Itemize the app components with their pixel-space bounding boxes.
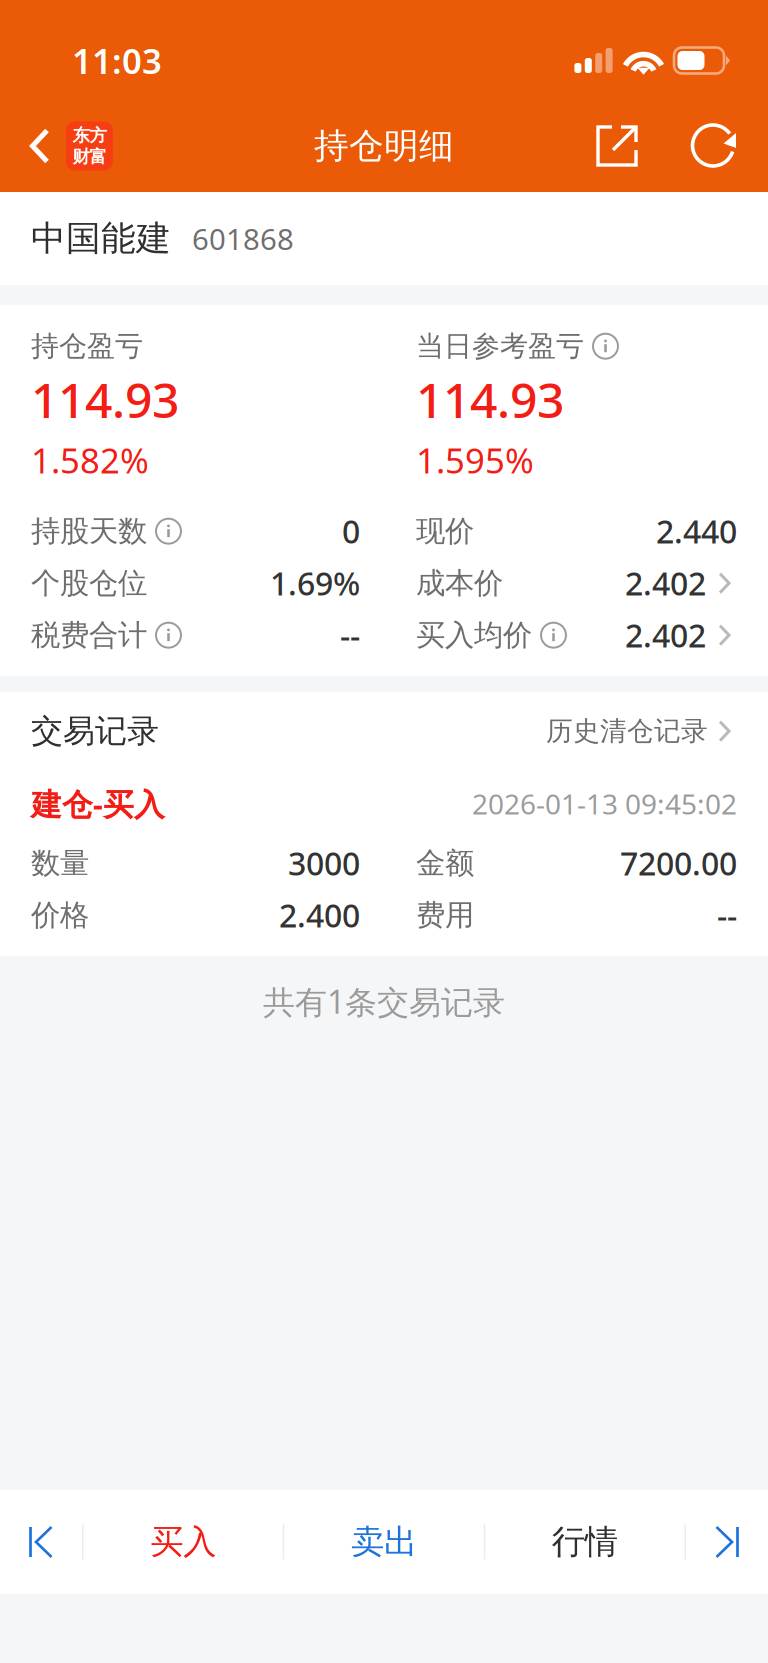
staticText: 价格 [31, 897, 89, 933]
staticText: 东方 [72, 125, 106, 146]
staticText: 税费合计 [31, 617, 147, 653]
button[interactable]: 买入 [83, 1490, 283, 1594]
staticText: -- [717, 894, 737, 936]
staticText: 历史清仓记录 [546, 715, 708, 748]
staticText: -- [340, 614, 360, 656]
staticText: 费用 [416, 897, 474, 933]
staticText: 当日参考盈亏 [416, 329, 584, 363]
staticText: 114.93 [416, 367, 564, 431]
staticText: 2.400 [279, 894, 360, 936]
staticText: 1.69% [270, 562, 360, 604]
staticText: 行情 [552, 1521, 618, 1562]
button[interactable]: 行情 [485, 1490, 685, 1594]
staticText: 1.595% [416, 437, 534, 483]
staticText: 7200.00 [620, 842, 737, 884]
staticText: 1.582% [31, 437, 149, 483]
staticText: 601868 [192, 219, 294, 258]
staticText: 2.402 [625, 562, 706, 604]
staticText: 0 [342, 510, 360, 552]
staticText: 现价 [416, 513, 474, 549]
staticText: 个股仓位 [31, 565, 147, 601]
button[interactable]: Refresh [676, 100, 753, 192]
button[interactable]: Back [0, 100, 125, 192]
staticText: 11:03 [72, 37, 162, 83]
button[interactable]: Previous stock [0, 1490, 82, 1594]
staticText: 买入 [150, 1521, 216, 1562]
staticText: 成本价 [416, 565, 503, 601]
staticText: 3000 [288, 842, 360, 884]
staticText: 114.93 [31, 367, 179, 431]
staticText: 共有1条交易记录 [263, 980, 505, 1023]
staticText: 持仓明细 [314, 125, 454, 167]
staticText: 2.402 [625, 614, 706, 656]
staticText: 2.440 [656, 510, 737, 552]
staticText: 中国能建 [31, 217, 171, 260]
staticText: 交易记录 [31, 711, 159, 751]
staticText: 卖出 [351, 1521, 417, 1562]
staticText: 金额 [416, 845, 474, 881]
staticText: 财富 [72, 146, 106, 167]
staticText: 建仓-买入 [31, 783, 165, 824]
staticText: 持股天数 [31, 513, 147, 549]
staticText: 2026-01-13 09:45:02 [472, 785, 737, 822]
button[interactable]: Share [558, 100, 676, 192]
button[interactable]: Next stock [686, 1490, 768, 1594]
staticText: 买入均价 [416, 617, 532, 653]
staticText: 数量 [31, 845, 89, 881]
button[interactable]: 卖出 [284, 1490, 484, 1594]
staticText: 持仓盈亏 [31, 329, 143, 363]
button[interactable]: 历史清仓记录 [546, 703, 737, 760]
